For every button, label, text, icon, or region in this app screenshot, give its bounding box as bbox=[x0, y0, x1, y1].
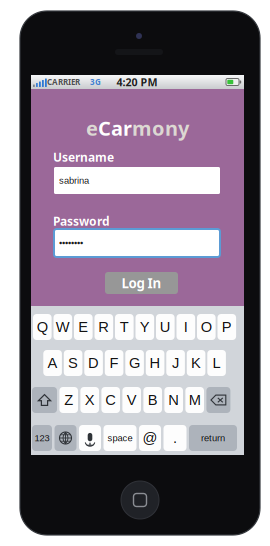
button[interactable]: S bbox=[64, 350, 82, 376]
button[interactable]: Switch keyboard bbox=[54, 425, 76, 451]
staticText: 4:20 PM bbox=[116, 75, 157, 89]
staticText: 123 bbox=[34, 433, 49, 443]
button[interactable]: I bbox=[176, 314, 195, 340]
button[interactable]: H bbox=[146, 350, 164, 376]
staticText: •••••••• bbox=[59, 238, 83, 248]
button[interactable]: C bbox=[101, 387, 120, 413]
button[interactable]: •••••••• bbox=[54, 229, 220, 257]
staticText: H bbox=[150, 355, 161, 371]
staticText: S bbox=[68, 355, 78, 371]
staticText: Q bbox=[37, 319, 48, 335]
button[interactable]: F bbox=[105, 350, 123, 376]
staticText: I bbox=[184, 319, 188, 335]
staticText: K bbox=[191, 355, 201, 371]
staticText: 3G bbox=[90, 77, 101, 87]
button[interactable]: N bbox=[164, 387, 183, 413]
staticText: sabrina bbox=[59, 175, 89, 186]
staticText: V bbox=[127, 392, 137, 408]
staticText: A bbox=[48, 355, 58, 371]
staticText: @ bbox=[142, 430, 157, 446]
button[interactable]: Dictate bbox=[79, 425, 101, 451]
staticText: W bbox=[56, 319, 70, 335]
button[interactable]: K bbox=[187, 350, 205, 376]
button[interactable]: V bbox=[122, 387, 141, 413]
button[interactable]: Y bbox=[135, 314, 154, 340]
staticText: J bbox=[172, 355, 179, 371]
staticText: X bbox=[85, 392, 95, 408]
button[interactable]: X bbox=[80, 387, 99, 413]
button[interactable]: P bbox=[217, 314, 236, 340]
button[interactable]: space bbox=[103, 425, 136, 451]
staticText: Username bbox=[53, 149, 114, 165]
button[interactable]: @ bbox=[139, 425, 161, 451]
button[interactable]: U bbox=[156, 314, 175, 340]
button[interactable]: Shift bbox=[32, 387, 57, 413]
staticText: space bbox=[107, 433, 132, 443]
button[interactable]: sabrina bbox=[54, 167, 220, 194]
button[interactable]: Q bbox=[33, 314, 52, 340]
staticText: Y bbox=[140, 319, 150, 335]
button[interactable]: M bbox=[185, 387, 204, 413]
button[interactable]: 123 bbox=[32, 425, 52, 451]
staticText: B bbox=[148, 392, 158, 408]
staticText: G bbox=[129, 355, 140, 371]
button[interactable]: Z bbox=[59, 387, 78, 413]
button[interactable]: J bbox=[166, 350, 185, 376]
staticText: F bbox=[110, 355, 119, 371]
staticText: M bbox=[189, 392, 201, 408]
button[interactable]: G bbox=[125, 350, 144, 376]
button[interactable]: A bbox=[43, 350, 62, 376]
staticText: mony bbox=[132, 114, 189, 142]
button[interactable]: R bbox=[94, 314, 113, 340]
staticText: O bbox=[201, 319, 212, 335]
staticText: Z bbox=[64, 392, 73, 408]
button[interactable]: D bbox=[84, 350, 103, 376]
button[interactable]: Return bbox=[189, 425, 237, 451]
staticText: return bbox=[201, 433, 225, 443]
staticText: D bbox=[88, 355, 99, 371]
staticText: U bbox=[160, 319, 171, 335]
button[interactable]: T bbox=[115, 314, 134, 340]
staticText: N bbox=[168, 392, 179, 408]
button[interactable]: E bbox=[74, 314, 93, 340]
button[interactable]: Log In bbox=[105, 272, 178, 294]
button[interactable]: B bbox=[143, 387, 162, 413]
button[interactable]: Delete bbox=[206, 387, 230, 413]
staticText: Password bbox=[53, 213, 110, 229]
staticText: Log In bbox=[121, 274, 161, 292]
staticText: R bbox=[98, 319, 109, 335]
staticText: C bbox=[105, 392, 116, 408]
staticText: L bbox=[213, 355, 221, 371]
staticText: . bbox=[173, 430, 177, 446]
button[interactable]: . bbox=[163, 425, 186, 451]
staticText: E bbox=[78, 319, 88, 335]
staticText: T bbox=[120, 319, 129, 335]
button[interactable]: L bbox=[207, 350, 226, 376]
staticText: P bbox=[222, 319, 232, 335]
staticText: CARRIER bbox=[47, 77, 80, 87]
staticText: e bbox=[86, 114, 98, 142]
button[interactable]: O bbox=[197, 314, 216, 340]
button[interactable]: W bbox=[53, 314, 72, 340]
staticText: Car bbox=[98, 114, 132, 142]
